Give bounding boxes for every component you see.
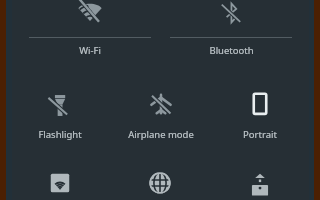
staticText: Flashlight (38, 128, 82, 141)
button[interactable]: Hotspot (10, 163, 110, 200)
staticText: Bluetooth (209, 44, 254, 57)
button[interactable]: Screen lock (210, 163, 310, 200)
button[interactable] (28, 0, 152, 60)
button[interactable]: Mobile data (110, 163, 210, 200)
button[interactable] (169, 0, 293, 60)
button[interactable] (210, 62, 310, 142)
button[interactable] (111, 62, 211, 142)
staticText: Airplane mode (128, 128, 194, 141)
button[interactable] (10, 62, 110, 142)
staticText: Wi-Fi (79, 44, 101, 57)
staticText: Portrait (243, 128, 277, 141)
